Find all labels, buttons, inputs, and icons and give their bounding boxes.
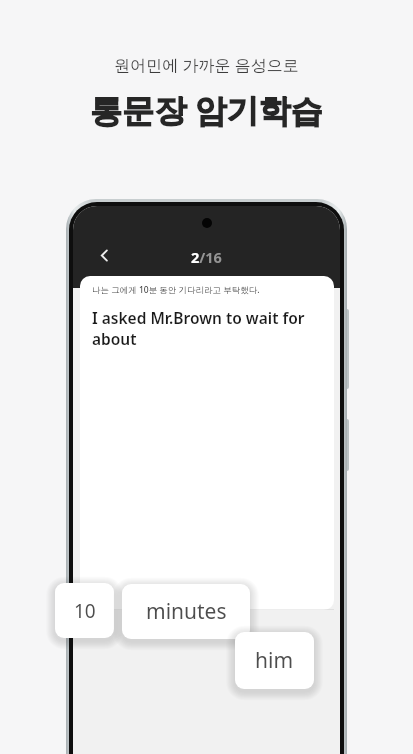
staticText: him (255, 646, 294, 675)
staticText: 10 (74, 598, 96, 624)
button[interactable]: 10 (55, 583, 114, 638)
staticText: I asked Mr.Brown to wait for about (92, 307, 324, 350)
button[interactable]: 나는 그에게 10분 동안 기다리라고 부탁했다. (80, 276, 334, 610)
staticText: minutes (146, 597, 227, 626)
staticText: 2/16 (191, 247, 222, 267)
button[interactable]: him (235, 632, 314, 689)
button[interactable]: Back (87, 238, 121, 272)
staticText: 통문장 암기학습 (90, 88, 323, 132)
staticText: 나는 그에게 10분 동안 기다리라고 부탁했다. (92, 284, 260, 296)
staticText: 원어민에 가까운 음성으로 (114, 54, 299, 76)
button[interactable]: minutes (122, 584, 250, 639)
